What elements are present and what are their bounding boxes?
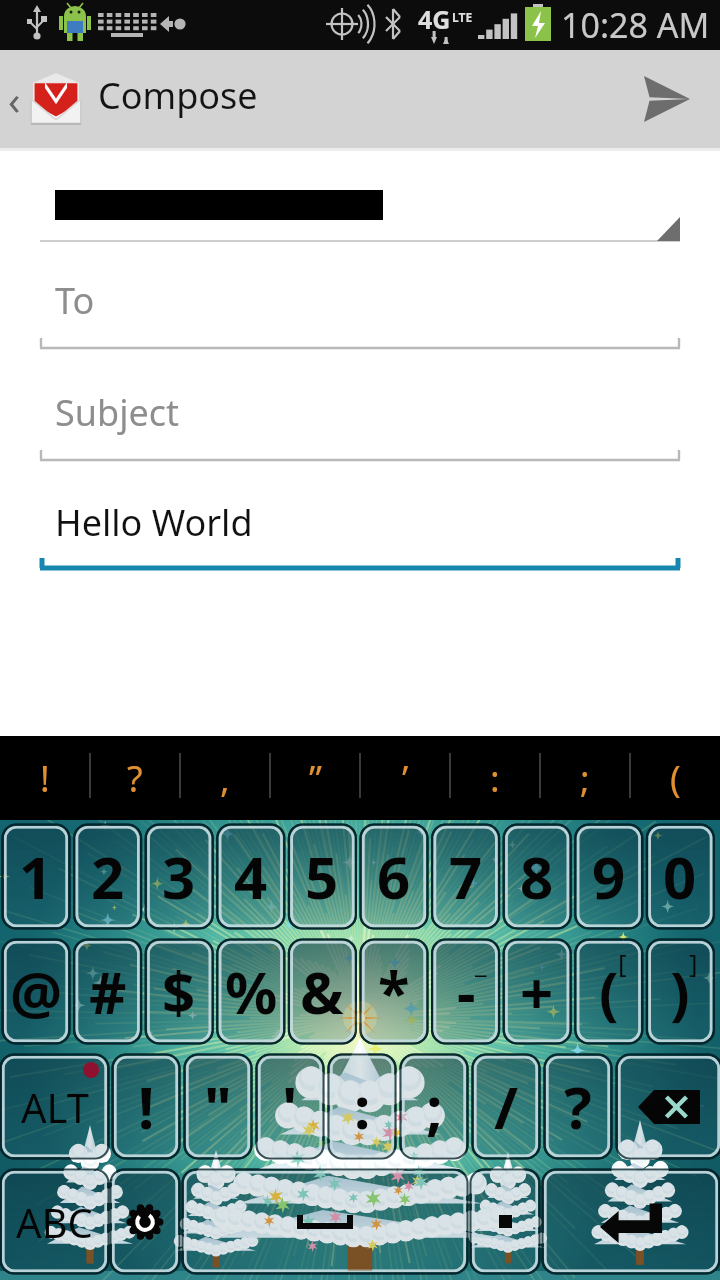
staticText: : <box>354 1067 371 1146</box>
button[interactable]: + <box>505 941 569 1042</box>
button[interactable]: ? <box>546 1056 610 1157</box>
button[interactable]: DOT <box>472 1171 538 1272</box>
button[interactable]: ‹ <box>0 50 720 148</box>
staticText: & <box>300 952 344 1031</box>
button[interactable]: SPACE <box>184 1171 466 1272</box>
staticText: ‹ <box>8 72 21 126</box>
button[interactable]: ABC <box>2 1171 107 1272</box>
button[interactable]: , <box>180 736 270 820</box>
button[interactable]: 7 <box>434 826 498 927</box>
staticText: ( <box>670 754 681 803</box>
button[interactable]: 1 <box>4 826 68 927</box>
staticText: / <box>494 1067 519 1146</box>
staticText: 5 <box>305 837 339 916</box>
staticText: 4 <box>234 837 268 916</box>
staticText: 10:28 AM <box>561 2 710 48</box>
button[interactable]: ; <box>540 736 630 820</box>
button[interactable]: Send <box>632 64 702 134</box>
staticText: 2 <box>91 837 125 916</box>
staticText: Hello World <box>55 498 253 547</box>
staticText: ? <box>564 1067 592 1146</box>
staticText: 3 <box>162 837 196 916</box>
staticText: # <box>89 952 127 1031</box>
staticText: 4G <box>418 2 451 36</box>
staticText: 7 <box>449 837 483 916</box>
button[interactable]: 9 <box>577 826 641 927</box>
staticText: ' <box>282 1067 298 1146</box>
button[interactable]: - <box>434 941 498 1042</box>
staticText: 6 <box>377 837 411 916</box>
button[interactable]: ’ <box>360 736 450 820</box>
button[interactable]: 2 <box>76 826 140 927</box>
button[interactable]: " <box>186 1056 250 1157</box>
button[interactable]: ( <box>630 736 720 820</box>
button[interactable]: ( <box>577 941 641 1042</box>
staticText: ( <box>599 952 619 1031</box>
button[interactable]: 4 <box>219 826 283 927</box>
staticText: - <box>457 952 476 1031</box>
button[interactable]: % <box>219 941 283 1042</box>
staticText: 1 <box>19 837 53 916</box>
staticText: ! <box>138 1067 155 1146</box>
staticText: ; <box>580 754 590 803</box>
button[interactable]: & <box>290 941 354 1042</box>
staticText: ? <box>127 754 143 803</box>
button[interactable]: ? <box>90 736 180 820</box>
button[interactable]: ! <box>114 1056 178 1157</box>
button[interactable]: ALT <box>2 1056 107 1157</box>
staticText: Subject <box>55 388 180 437</box>
button[interactable]: DEL <box>618 1056 720 1157</box>
button[interactable]: ) <box>648 941 712 1042</box>
staticText: ALT <box>21 1080 89 1134</box>
staticText: $ <box>162 952 196 1031</box>
staticText: * <box>378 952 410 1031</box>
button[interactable]: # <box>76 941 140 1042</box>
button[interactable]: @ <box>4 941 68 1042</box>
button[interactable]: ! <box>0 736 90 820</box>
button[interactable]: 5 <box>290 826 354 927</box>
button[interactable]: ; <box>402 1056 466 1157</box>
button[interactable]: ' <box>258 1056 322 1157</box>
staticText: " <box>204 1067 232 1146</box>
staticText: , <box>220 754 230 803</box>
button[interactable]: / <box>474 1056 538 1157</box>
button[interactable]: 0 <box>648 826 712 927</box>
staticText: LTE <box>452 9 473 25</box>
staticText: 9 <box>592 837 626 916</box>
staticText: ABC <box>16 1195 93 1249</box>
staticText: : <box>490 754 500 803</box>
staticText: ! <box>40 754 50 803</box>
button[interactable]: : <box>330 1056 394 1157</box>
staticText: % <box>225 952 278 1031</box>
button[interactable]: 8 <box>505 826 569 927</box>
button[interactable]: 6 <box>362 826 426 927</box>
staticText: [ <box>618 945 627 980</box>
button[interactable]: : <box>450 736 540 820</box>
button[interactable]: $ <box>147 941 211 1042</box>
staticText: ) <box>670 952 690 1031</box>
button[interactable]: 3 <box>147 826 211 927</box>
button[interactable]: ” <box>270 736 360 820</box>
button[interactable]: ENTER <box>544 1171 718 1272</box>
staticText: ] <box>689 945 698 980</box>
staticText: Compose <box>98 71 258 120</box>
staticText: 8 <box>520 837 554 916</box>
staticText: To <box>55 276 95 325</box>
staticText: ; <box>426 1067 443 1146</box>
button[interactable]: * <box>362 941 426 1042</box>
staticText: 0 <box>663 837 697 916</box>
staticText: ’ <box>402 754 409 803</box>
staticText: @ <box>10 952 63 1031</box>
staticText: _ <box>475 945 487 980</box>
staticText: ” <box>309 754 322 803</box>
staticText: + <box>520 952 554 1031</box>
button[interactable]: MIC <box>112 1171 178 1272</box>
